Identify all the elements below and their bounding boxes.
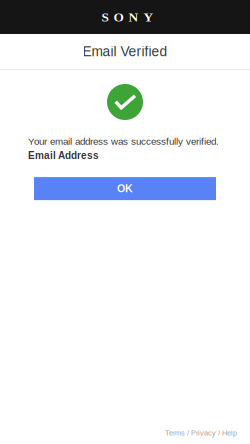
staticText: Privacy (191, 429, 216, 437)
staticText: Your email address was successfully veri… (28, 136, 219, 147)
button[interactable]: Help (222, 429, 237, 437)
staticText: Email Verified (82, 44, 167, 59)
staticText: SONY (101, 10, 153, 24)
button[interactable]: Terms (165, 429, 185, 437)
staticText: Terms (165, 429, 185, 437)
button[interactable]: Privacy (191, 429, 216, 437)
staticText: Help (222, 429, 237, 437)
button[interactable]: OK (34, 177, 216, 200)
staticText: Email Address (28, 150, 99, 161)
staticText: OK (117, 183, 133, 195)
staticText: / (216, 429, 222, 437)
staticText: / (185, 429, 191, 437)
